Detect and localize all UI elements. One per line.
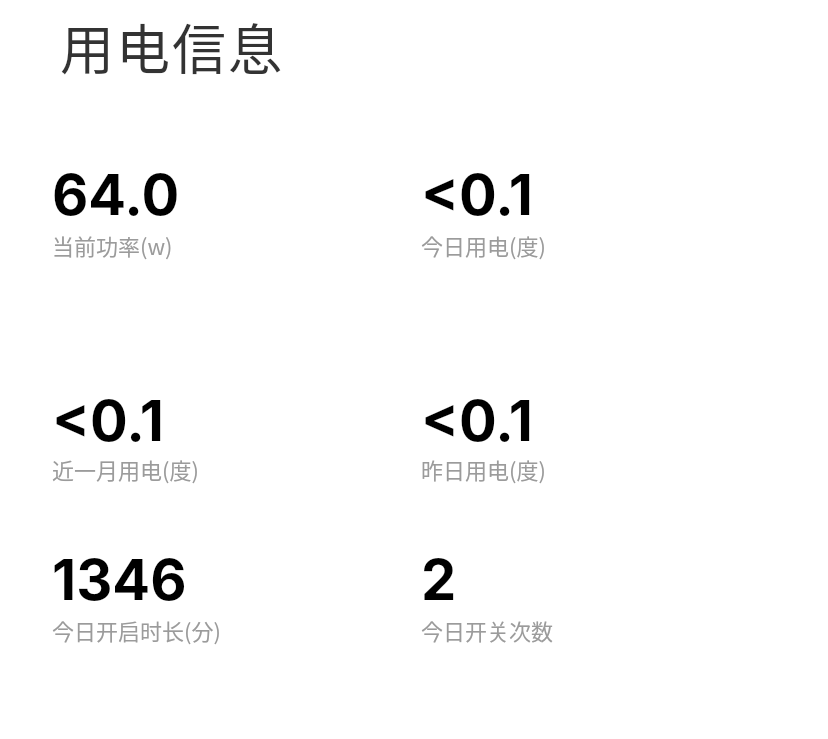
staticText: 当前功率(w) [52, 229, 173, 261]
button[interactable]: <0.1 [421, 387, 761, 487]
staticText: <0.1 [421, 387, 533, 455]
staticText: 1346 [52, 546, 187, 614]
staticText: 64.0 [52, 161, 180, 229]
staticText: <0.1 [52, 387, 164, 455]
staticText: 昨日用电(度) [421, 453, 546, 485]
button[interactable]: <0.1 [52, 387, 392, 487]
button[interactable]: 64.0 [52, 161, 392, 263]
staticText: 用电信息 [60, 7, 284, 85]
staticText: 今日开关次数 [421, 614, 554, 646]
button[interactable]: 1346 [52, 546, 392, 648]
button[interactable]: 2 [421, 546, 761, 648]
staticText: 2 [421, 546, 457, 614]
staticText: 今日开启时长(分) [52, 614, 221, 646]
staticText: 今日用电(度) [421, 229, 546, 261]
staticText: 近一月用电(度) [52, 453, 199, 485]
button[interactable]: <0.1 [421, 161, 761, 263]
staticText: <0.1 [421, 161, 533, 229]
